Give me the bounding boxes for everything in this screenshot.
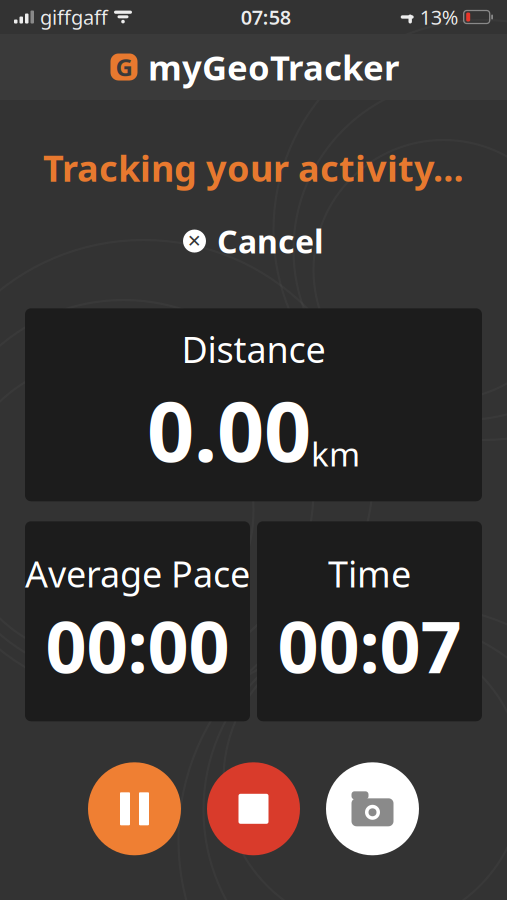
button[interactable]: Stop [207,762,300,855]
staticText: 07:58 [241,4,291,30]
staticText: G [115,51,132,83]
button[interactable]: Pause [88,762,181,855]
staticText: 0.00 [147,375,311,485]
staticText: myGeoTracker [148,44,399,90]
staticText: Cancel [217,220,324,262]
staticText: 13% [420,4,459,30]
staticText: Tracking your activity… [43,144,464,192]
staticText: Time [328,550,411,597]
staticText: Average Pace [25,550,250,597]
staticText: 00:07 [277,597,461,693]
staticText: 00:00 [45,597,229,693]
button[interactable]: ✕ [173,216,334,266]
button[interactable]: Take photo [326,762,419,855]
staticText: ✕ [187,231,202,251]
staticText: km [311,431,360,476]
staticText: Distance [181,325,325,373]
staticText: giffgaff [40,4,108,30]
